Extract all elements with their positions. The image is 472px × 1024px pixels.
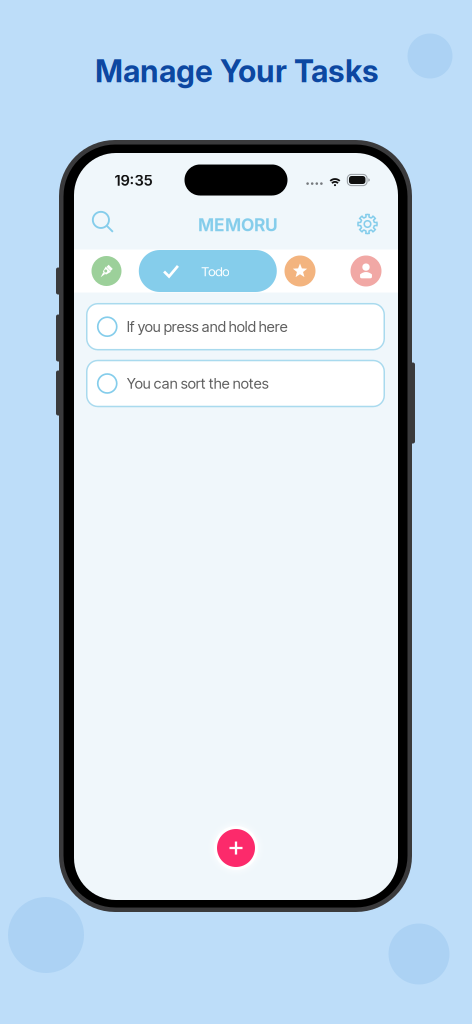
staticText: Todo	[201, 263, 229, 279]
staticText: If you press and hold here	[127, 318, 288, 335]
button[interactable]: Search	[83, 204, 123, 240]
staticText: MEMORU	[198, 214, 278, 235]
staticText: You can sort the notes	[127, 375, 269, 392]
button[interactable]: Account	[350, 255, 381, 286]
button[interactable]: Todo	[139, 250, 277, 292]
button[interactable]: Settings	[347, 206, 387, 242]
staticText: Manage Your Tasks	[95, 52, 379, 89]
button[interactable]: You can sort the notes	[87, 360, 384, 406]
button[interactable]: If you press and hold here	[87, 304, 384, 350]
button[interactable]: Compose	[91, 256, 121, 286]
button[interactable]: Favourites	[284, 255, 315, 286]
staticText: 19:35	[114, 172, 152, 189]
button[interactable]: Add note	[212, 824, 260, 872]
